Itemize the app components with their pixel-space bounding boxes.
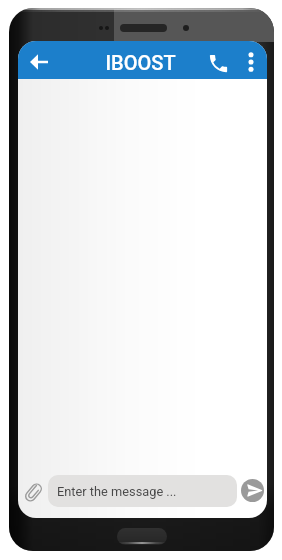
button[interactable]: Attach file xyxy=(19,478,47,506)
button[interactable]: Enter the message ... xyxy=(48,475,237,507)
button[interactable]: Send xyxy=(241,479,264,502)
staticText: IBOOST xyxy=(105,51,176,74)
staticText: Enter the message ... xyxy=(57,484,177,499)
button[interactable]: Back xyxy=(20,43,58,81)
button[interactable]: More options xyxy=(236,47,265,76)
button[interactable]: Call xyxy=(203,48,234,79)
